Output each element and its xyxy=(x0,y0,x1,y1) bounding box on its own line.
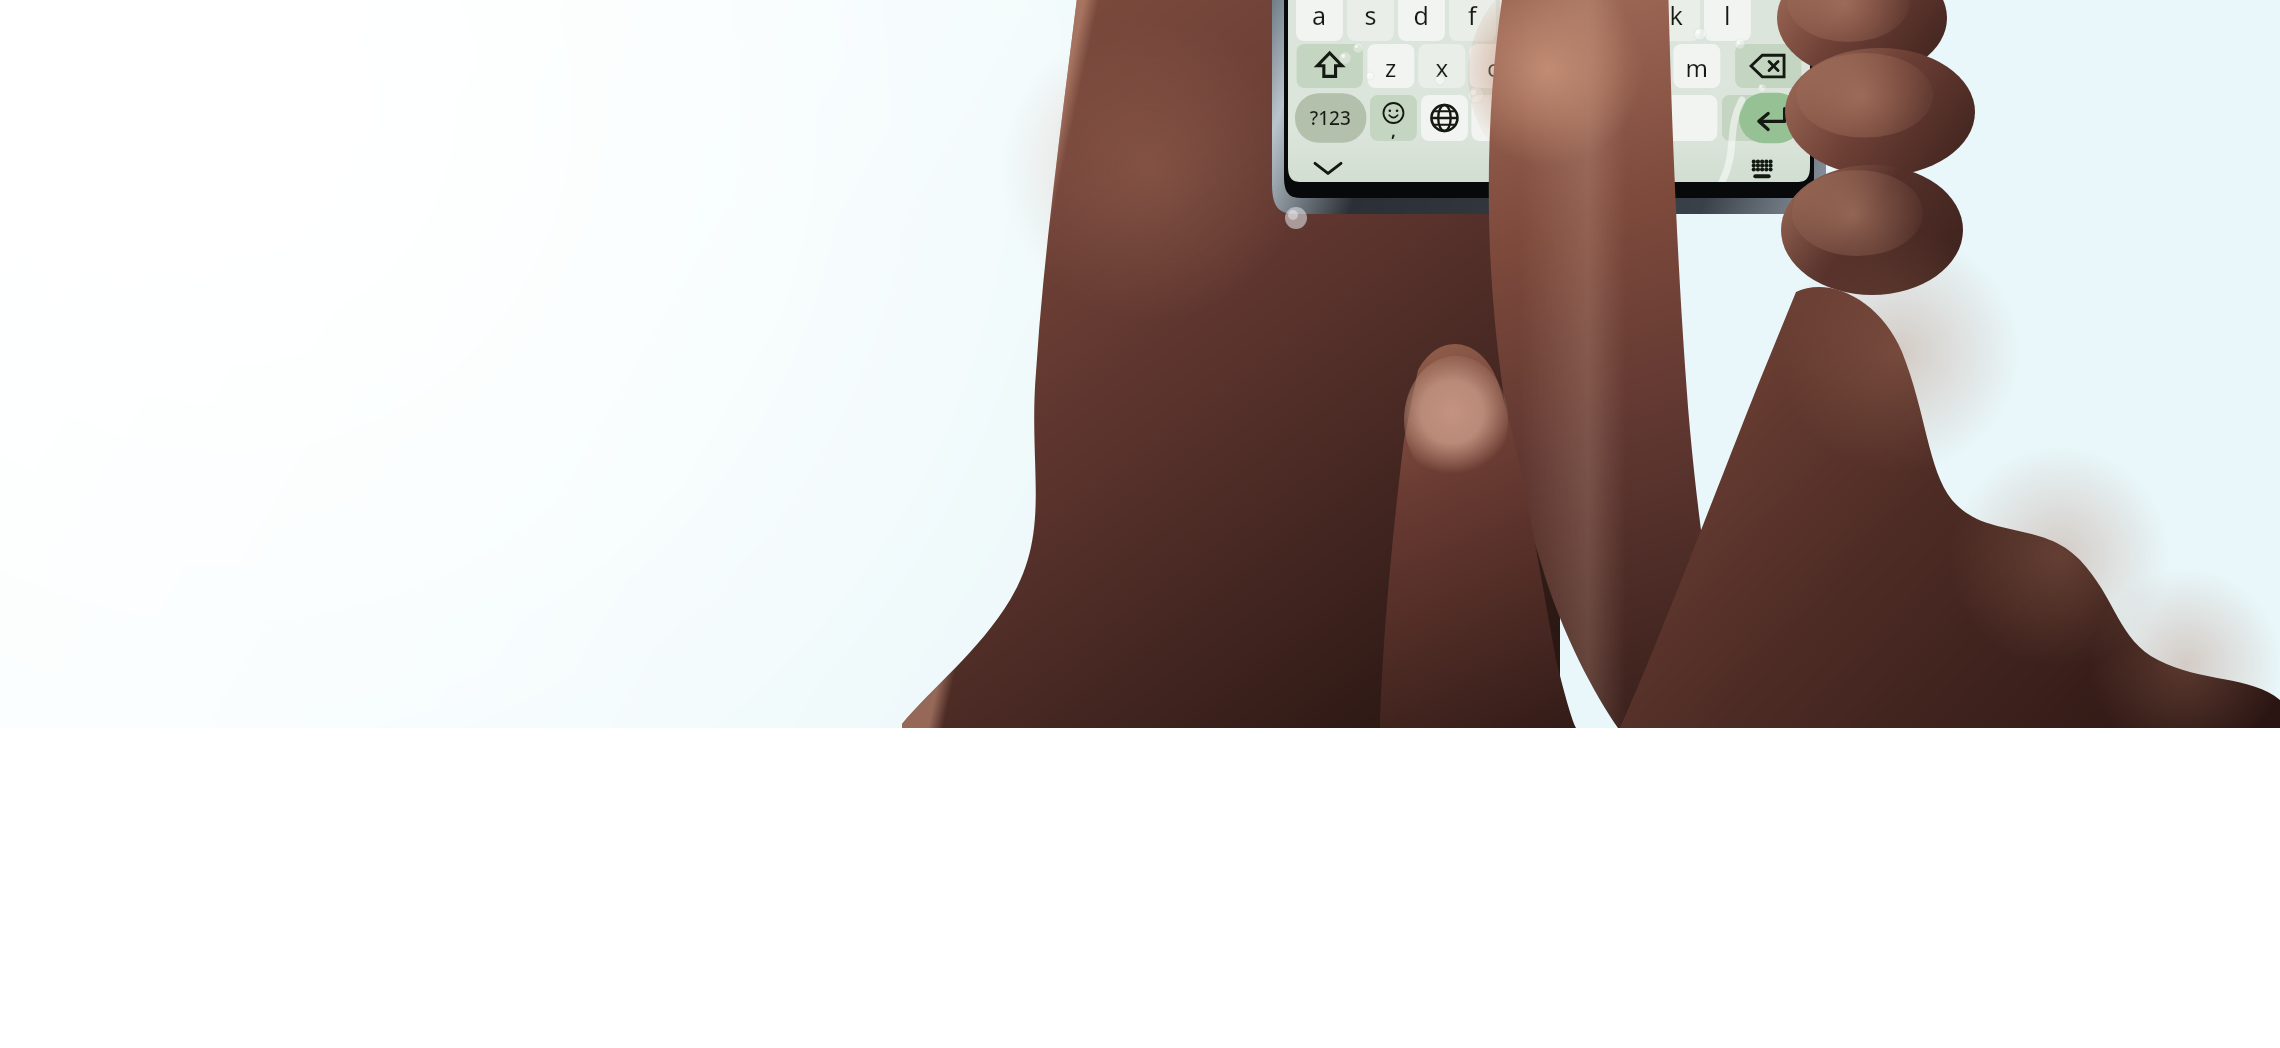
button[interactable]: Phone keyboard product photo xyxy=(0,0,2280,1048)
